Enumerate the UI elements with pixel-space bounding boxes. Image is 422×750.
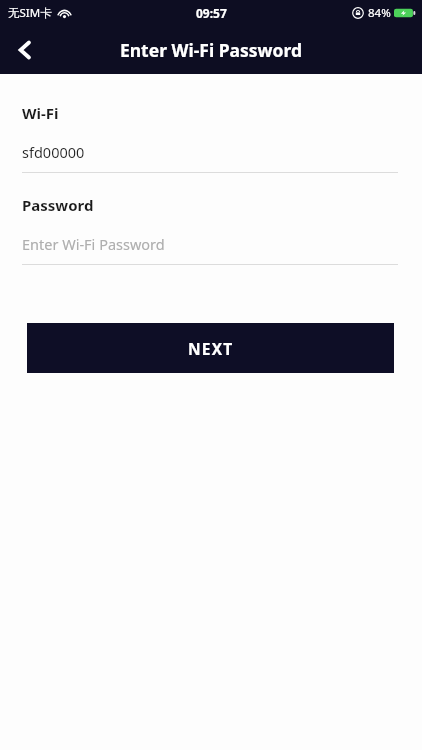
staticText: Enter Wi-Fi Password bbox=[22, 234, 165, 254]
staticText: Password bbox=[22, 195, 94, 215]
button[interactable]: Back bbox=[0, 26, 48, 74]
staticText: Wi-Fi bbox=[22, 103, 59, 123]
staticText: 无SIM卡 bbox=[8, 5, 52, 21]
staticText: Enter Wi-Fi Password bbox=[0, 38, 422, 62]
staticText: 84% bbox=[368, 5, 391, 21]
staticText: NEXT bbox=[188, 338, 234, 359]
button[interactable]: NEXT bbox=[27, 323, 394, 373]
staticText: sfd00000 bbox=[22, 142, 85, 162]
button[interactable]: sfd00000 bbox=[0, 142, 422, 162]
staticText: 09:57 bbox=[196, 5, 227, 21]
button[interactable]: Enter Wi-Fi Password bbox=[0, 234, 422, 254]
